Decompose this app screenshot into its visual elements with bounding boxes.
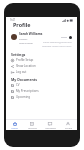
- staticText: Member since March 2021: [42, 44, 72, 47]
- button[interactable]: Profile: [59, 120, 77, 130]
- button[interactable]: Edit profile: [69, 36, 72, 39]
- staticText: Records: [28, 127, 37, 130]
- staticText: Profile: [65, 127, 72, 130]
- button[interactable]: Show Location: [6, 63, 77, 69]
- button[interactable]: Messages: [41, 120, 59, 130]
- staticText: My Documents: [11, 77, 38, 82]
- staticText: Home: [11, 127, 18, 130]
- staticText: Messages: [45, 127, 56, 130]
- staticText: Show Location: [16, 64, 36, 68]
- staticText: Upcoming: [16, 95, 31, 99]
- button[interactable]: CV: [6, 82, 77, 88]
- button[interactable]: My Prescriptions: [6, 88, 77, 94]
- button[interactable]: Sarah Williams: [6, 30, 77, 44]
- button[interactable]: Profile Setup: [6, 57, 77, 63]
- staticText: View profile: [19, 41, 33, 44]
- staticText: CV: [16, 83, 20, 87]
- button[interactable]: Home: [6, 120, 23, 130]
- staticText: sarah.williams@mail.com: [43, 40, 72, 43]
- staticText: My Prescriptions: [16, 89, 39, 93]
- staticText: Sarah Williams: [19, 32, 43, 36]
- staticText: 9:41: [10, 18, 16, 22]
- button[interactable]: Records: [23, 120, 41, 130]
- staticText: Profile Setup: [16, 58, 34, 62]
- staticText: Settings: [11, 52, 26, 57]
- button[interactable]: Log out: [6, 69, 77, 75]
- staticText: Profile: [13, 21, 31, 28]
- button[interactable]: Upcoming: [6, 94, 77, 100]
- staticText: Log out: [16, 70, 27, 74]
- staticText: Patient: [19, 37, 28, 40]
